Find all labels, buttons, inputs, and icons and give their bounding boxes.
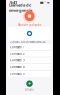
button[interactable]: Contacto 1 <box>8 44 51 51</box>
button[interactable]: Contacto 3 <box>8 57 51 64</box>
button[interactable]: Contacto 5 <box>8 70 51 77</box>
button[interactable]: Añadir contacto <box>26 80 33 87</box>
button[interactable]: Llamada de emergencia <box>22 9 36 23</box>
staticText: ▮▮▮ ⌃ ▬ <box>40 1 50 4</box>
button[interactable]: Contacto 2 <box>8 51 51 57</box>
staticText: + <box>28 80 31 87</box>
staticText: Mantén pulsado <box>17 23 41 27</box>
staticText: CONTACTOS DE EMERGENCIA <box>9 40 45 44</box>
button[interactable]: Contacto 4 <box>8 64 51 70</box>
staticText: 9:41 <box>10 0 17 5</box>
staticText: Contacto 5 <box>10 72 25 75</box>
staticText: Añadir <box>25 88 34 91</box>
staticText: Contacto 1 <box>10 45 25 49</box>
staticText: Contacto 4 <box>10 65 25 69</box>
staticText: Llamada de emergencia <box>9 2 32 13</box>
staticText: Contacto 2 <box>10 52 25 55</box>
staticText: Contacto 3 <box>10 58 25 62</box>
